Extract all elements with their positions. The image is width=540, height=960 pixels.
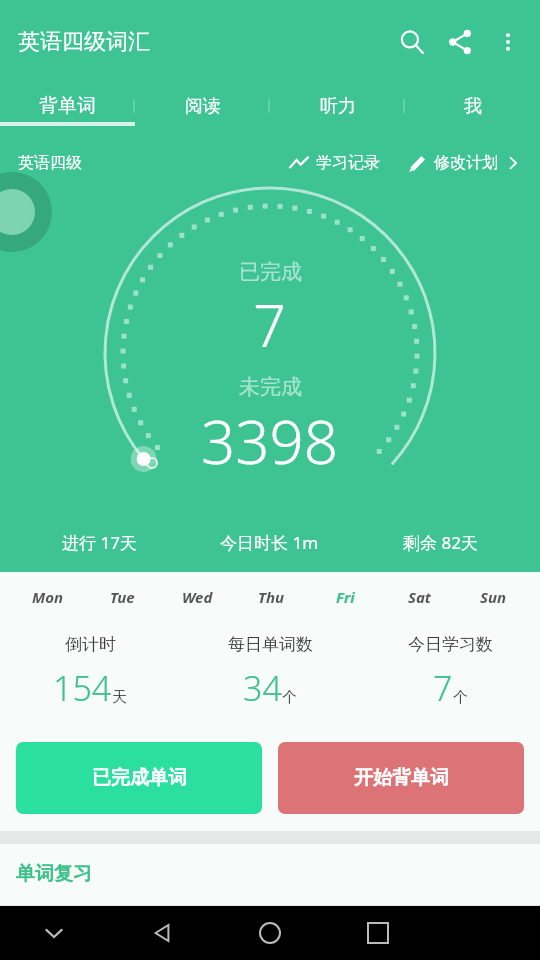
staticText: 单词复习: [16, 862, 92, 886]
button[interactable]: 阅读: [135, 84, 270, 128]
button[interactable]: 我: [405, 84, 540, 128]
staticText: 背单词: [39, 94, 96, 118]
button[interactable]: 倒计时: [0, 622, 180, 737]
staticText: 英语四级: [18, 153, 82, 173]
staticText: Fri: [336, 587, 355, 607]
staticText: 每日单词数: [228, 634, 313, 655]
staticText: Tue: [110, 587, 135, 607]
staticText: 倒计时: [65, 634, 116, 655]
button[interactable]: Sat: [382, 572, 456, 622]
button[interactable]: 今日学习数: [360, 622, 540, 737]
staticText: 学习记录: [316, 153, 380, 173]
button[interactable]: 已完成单词: [16, 742, 262, 814]
staticText: Thu: [258, 587, 285, 607]
staticText: 修改计划: [434, 153, 498, 173]
button[interactable]: Tue: [85, 572, 160, 622]
button[interactable]: Sun: [456, 572, 530, 622]
staticText: 个: [282, 688, 297, 707]
staticText: 34: [243, 665, 282, 711]
staticText: 3398: [201, 400, 339, 482]
staticText: 未完成: [239, 374, 302, 400]
button[interactable]: 背单词: [0, 84, 135, 128]
staticText: 154: [53, 665, 112, 711]
button[interactable]: Back: [108, 906, 216, 960]
staticText: Mon: [32, 587, 64, 607]
staticText: 阅读: [185, 95, 221, 118]
button[interactable]: 学习记录: [285, 153, 384, 173]
button[interactable]: Share: [436, 18, 484, 66]
staticText: Wed: [182, 587, 213, 607]
staticText: 今日时长 1m: [220, 531, 319, 554]
staticText: 英语四级词汇: [18, 28, 150, 56]
button[interactable]: Mon: [10, 572, 85, 622]
staticText: 听力: [320, 95, 356, 118]
button[interactable]: Fri: [308, 572, 382, 622]
staticText: Sat: [408, 587, 431, 607]
button[interactable]: Home: [216, 906, 324, 960]
staticText: 已完成单词: [92, 766, 187, 790]
button[interactable]: 听力: [270, 84, 405, 128]
button[interactable]: 修改计划: [406, 153, 522, 173]
staticText: 进行 17天: [62, 531, 137, 554]
staticText: 开始背单词: [354, 766, 449, 790]
staticText: 已完成: [239, 259, 302, 285]
button[interactable]: Search: [388, 18, 436, 66]
staticText: 7: [433, 665, 453, 711]
staticText: 今日学习数: [408, 634, 493, 655]
staticText: 剩余 82天: [403, 531, 478, 554]
button[interactable]: 开始背单词: [278, 742, 524, 814]
button[interactable]: 单词复习: [0, 844, 540, 906]
button[interactable]: Thu: [234, 572, 308, 622]
button[interactable]: 每日单词数: [180, 622, 360, 737]
staticText: Sun: [480, 587, 507, 607]
button[interactable]: Recent apps: [324, 906, 432, 960]
staticText: 我: [464, 95, 482, 118]
staticText: 个: [453, 688, 468, 707]
staticText: 天: [112, 688, 127, 707]
button[interactable]: Hide keyboard: [0, 906, 108, 960]
button[interactable]: More options: [484, 18, 532, 66]
staticText: 7: [253, 285, 287, 364]
button[interactable]: Wed: [160, 572, 234, 622]
